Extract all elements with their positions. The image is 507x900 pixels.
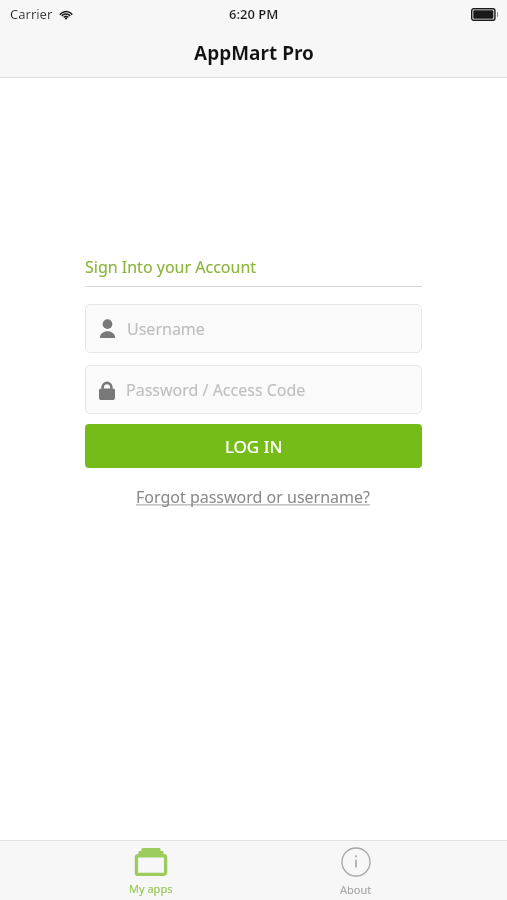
staticText: Username: [127, 318, 205, 340]
button[interactable]: Password / Access Code: [85, 365, 422, 414]
staticText: AppMart Pro: [194, 40, 314, 66]
staticText: Password / Access Code: [126, 379, 306, 401]
button[interactable]: Username: [85, 304, 422, 353]
button[interactable]: LOG IN: [85, 424, 422, 468]
staticText: My apps: [129, 881, 173, 896]
staticText: LOG IN: [225, 435, 283, 458]
staticText: 6:20 PM: [229, 5, 279, 23]
staticText: Sign Into your Account: [85, 256, 257, 278]
button[interactable]: Forgot password or username?: [132, 482, 375, 512]
button[interactable]: My apps: [96, 841, 206, 900]
staticText: Carrier: [10, 5, 53, 23]
button[interactable]: About: [301, 841, 411, 900]
staticText: About: [340, 882, 372, 897]
